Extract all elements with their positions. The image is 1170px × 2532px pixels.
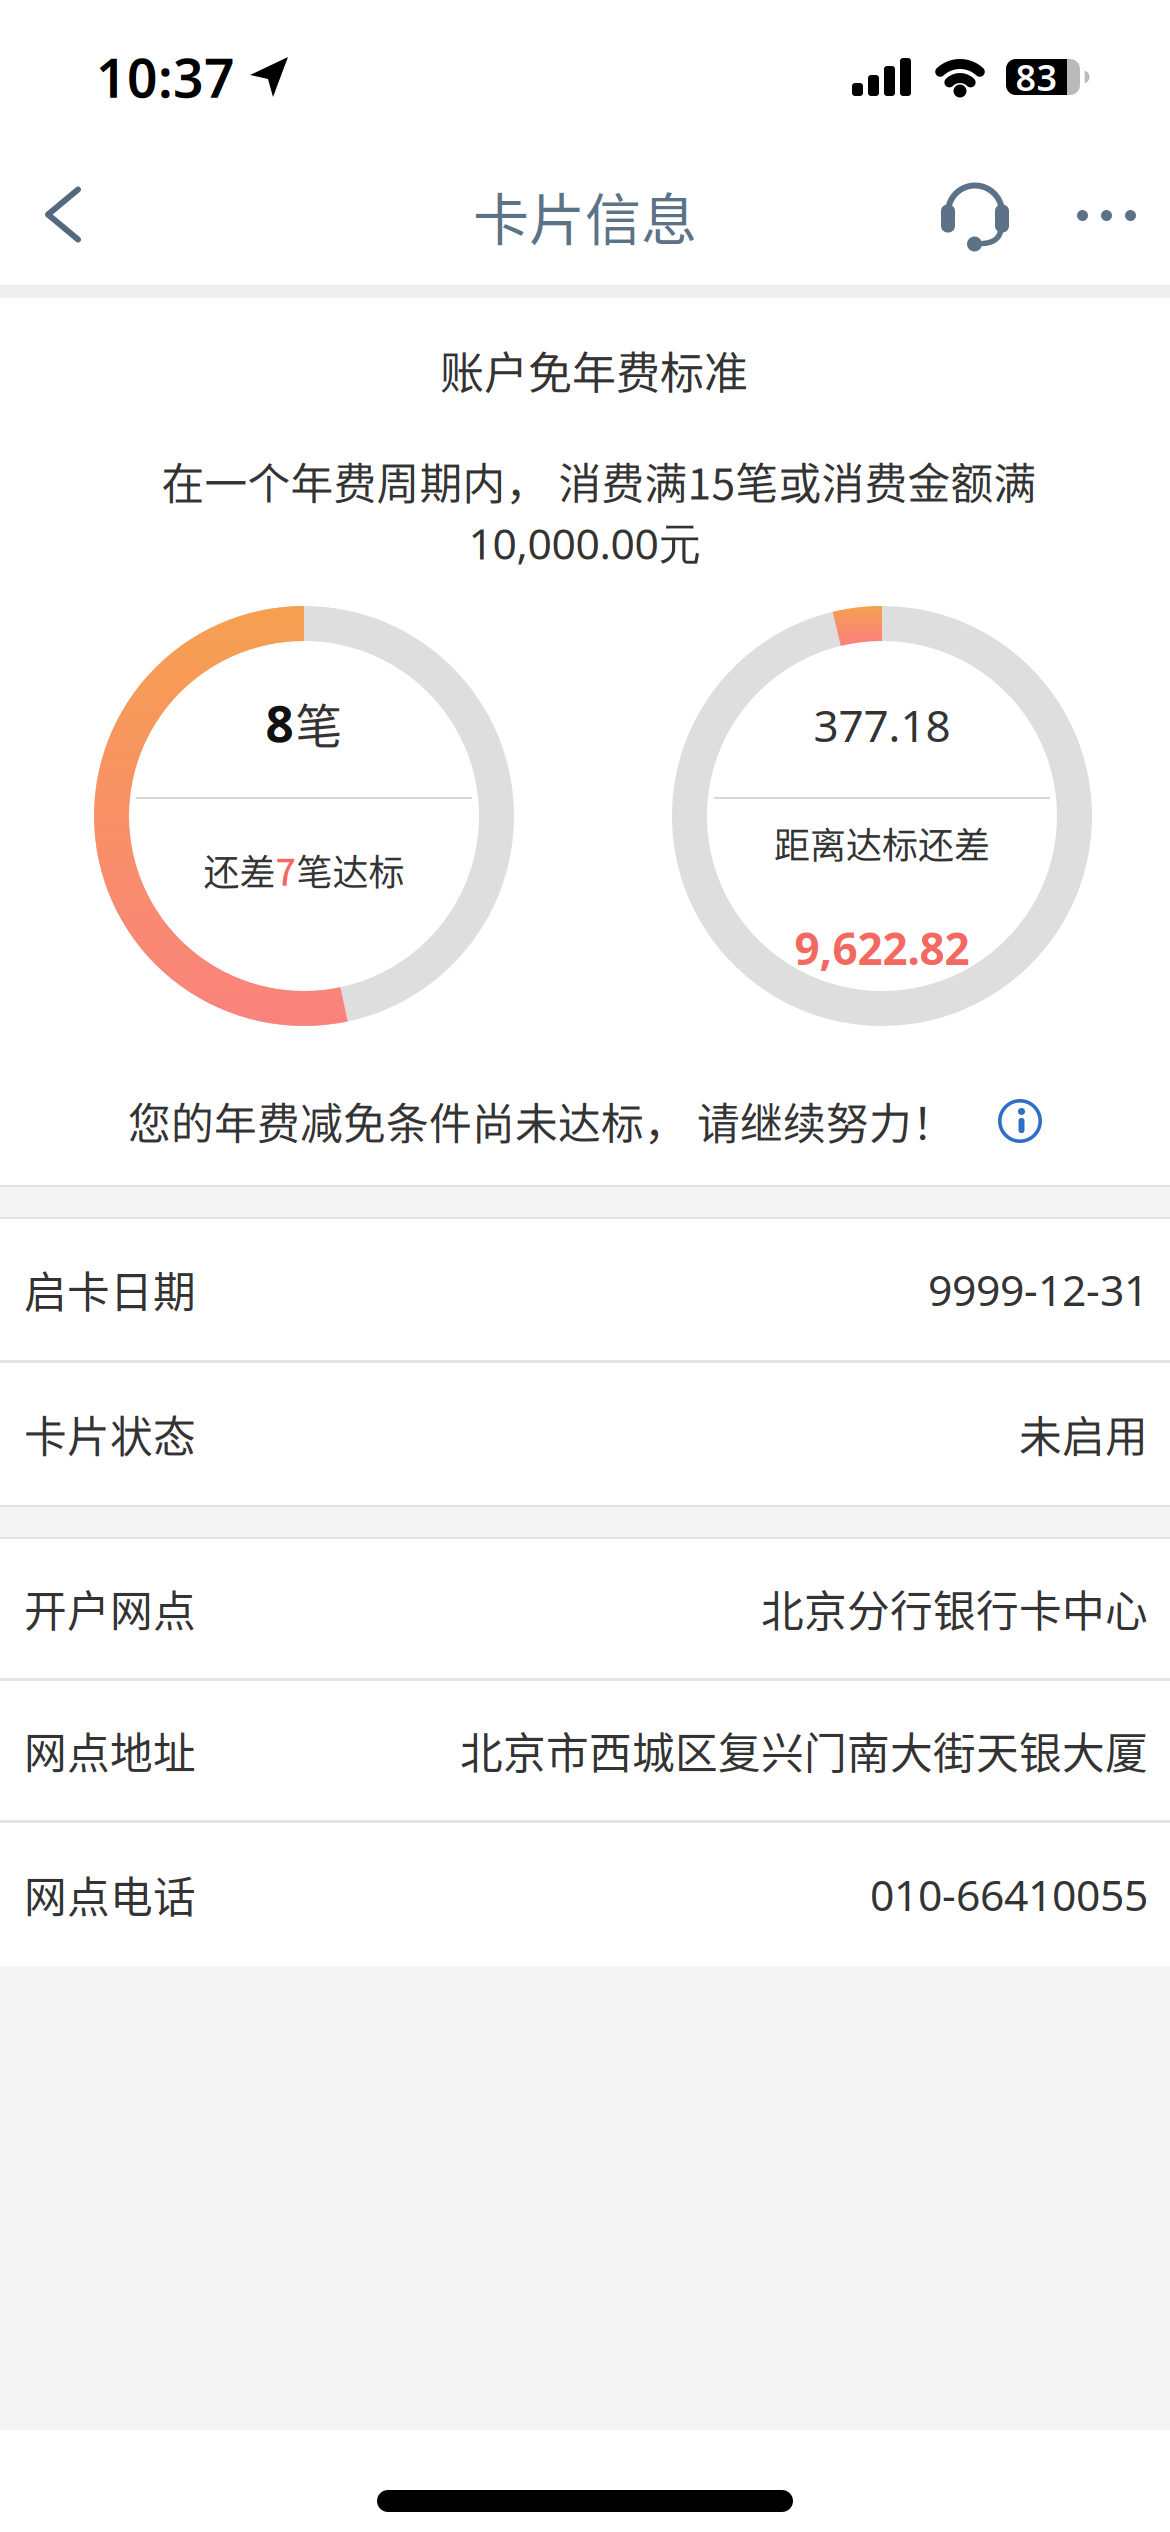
button[interactable]: 说明: [998, 1099, 1042, 1143]
staticText: 9,622.82: [794, 919, 969, 977]
staticText: 启卡日期: [24, 1259, 196, 1320]
staticText: 10:37: [96, 42, 235, 112]
staticText: 还差: [203, 844, 275, 896]
staticText: 卡片信息: [473, 175, 697, 256]
staticText: 9999-12-31: [928, 1261, 1148, 1318]
staticText: 8: [265, 690, 293, 756]
staticText: 7: [275, 844, 296, 896]
staticText: 10,000.00元: [468, 515, 701, 571]
staticText: 笔达标: [296, 844, 404, 896]
staticText: 未启用: [1019, 1403, 1148, 1465]
staticText: 010-66410055: [870, 1866, 1148, 1923]
staticText: 开户网点: [24, 1578, 196, 1639]
button[interactable]: 客服: [939, 179, 1011, 251]
button[interactable]: 返回: [44, 180, 82, 250]
staticText: 账户免年费标准: [440, 338, 748, 402]
button[interactable]: 更多: [1077, 194, 1136, 237]
staticText: 网点电话: [24, 1864, 196, 1925]
staticText: 距离达标还差: [774, 817, 990, 869]
staticText: 您的年费减免条件尚未达标， 请继续努力！: [128, 1090, 955, 1152]
staticText: 北京市西城区复兴门南大街天银大厦: [460, 1720, 1148, 1781]
staticText: 卡片状态: [24, 1403, 196, 1465]
staticText: 83: [1015, 53, 1057, 101]
staticText: 377.18: [813, 696, 950, 754]
staticText: 网点地址: [24, 1720, 196, 1781]
staticText: 北京分行银行卡中心: [761, 1578, 1148, 1639]
staticText: 笔: [295, 689, 342, 757]
staticText: 在一个年费周期内， 消费满15笔或消费金额满: [161, 450, 1036, 512]
